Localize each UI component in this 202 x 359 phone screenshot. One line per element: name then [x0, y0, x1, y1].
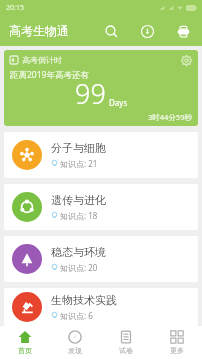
staticText: 稳态与环境	[51, 245, 106, 259]
staticText: 遗传与进化	[51, 193, 106, 207]
button[interactable]: Search	[100, 20, 122, 42]
staticText: 20:15	[6, 3, 24, 13]
staticText: 99	[75, 75, 106, 112]
staticText: 首页	[18, 346, 32, 355]
button[interactable]: 生物技术实践	[4, 288, 198, 326]
button[interactable]: Settings	[179, 53, 193, 67]
staticText: 发现	[68, 346, 82, 355]
staticText: 知识点: 20	[60, 262, 98, 273]
staticText: 更多	[170, 346, 184, 355]
staticText: 分子与细胞	[51, 141, 106, 155]
button[interactable]: 更多	[151, 326, 202, 359]
button[interactable]: 首页	[0, 326, 50, 359]
button[interactable]: 发现	[50, 326, 100, 359]
button[interactable]: Download	[136, 20, 158, 42]
button[interactable]: Print	[172, 20, 194, 42]
button[interactable]: 试卷	[100, 326, 151, 359]
button[interactable]: 稳态与环境	[4, 236, 198, 282]
staticText: 知识点: 18	[60, 210, 98, 221]
staticText: 3时44分59秒	[148, 112, 192, 122]
staticText: Days	[109, 97, 128, 108]
staticText: 试卷	[119, 346, 133, 355]
button[interactable]: 分子与细胞	[4, 132, 198, 178]
staticText: 距离2019年高考还有	[10, 69, 89, 81]
button[interactable]: 高考倒计时	[4, 50, 198, 126]
button[interactable]: 遗传与进化	[4, 184, 198, 230]
staticText: 生物技术实践	[51, 293, 117, 307]
staticText: 高考生物通	[9, 23, 69, 38]
staticText: 知识点: 21	[60, 158, 98, 169]
staticText: 知识点: 6	[60, 310, 93, 321]
staticText: 高考倒计时	[22, 55, 62, 65]
